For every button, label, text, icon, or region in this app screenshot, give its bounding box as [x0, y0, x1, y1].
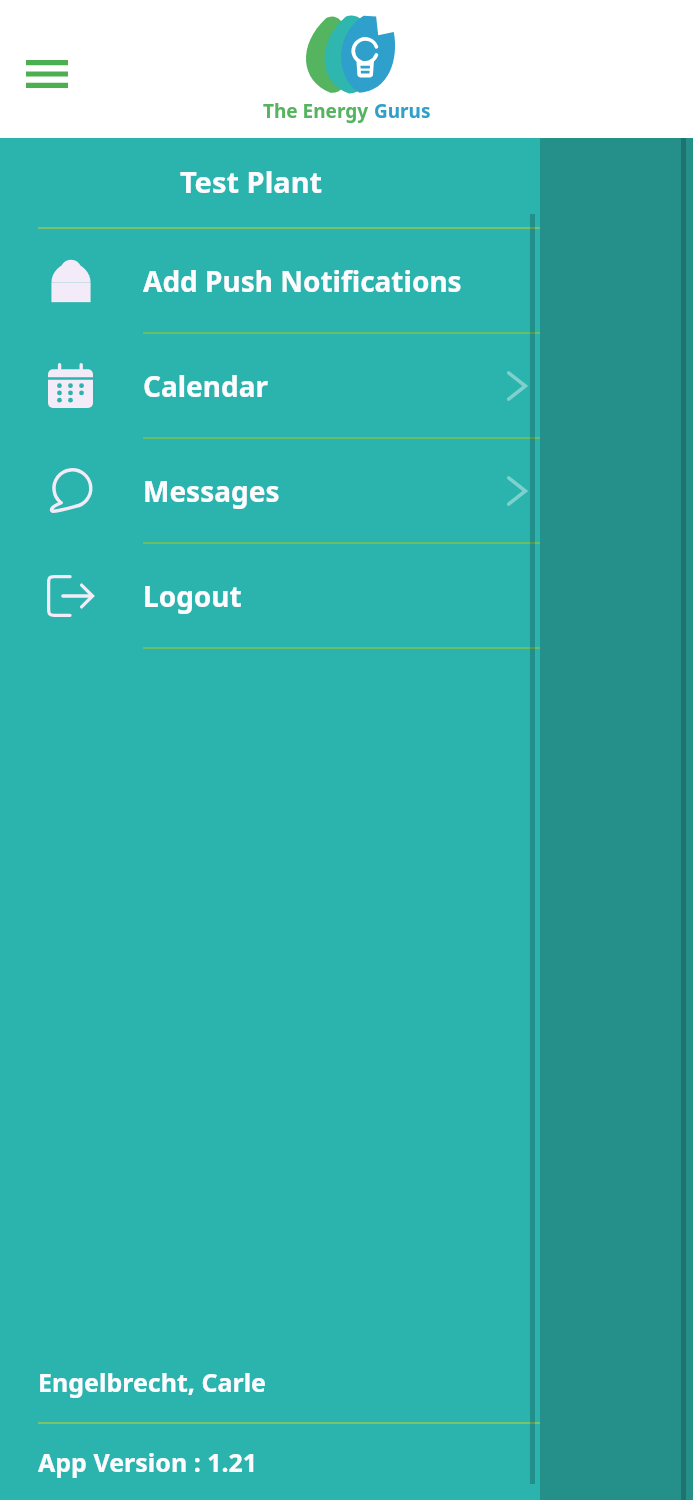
- staticText: Gurus: [374, 98, 431, 124]
- staticText: Logout: [143, 577, 493, 615]
- button[interactable]: Add Push Notifications: [0, 229, 540, 332]
- staticText: Add Push Notifications: [143, 262, 493, 300]
- staticText: Calendar: [143, 367, 493, 405]
- staticText: App Version : 1.21: [38, 1445, 258, 1479]
- staticText: Test Plant: [0, 162, 502, 201]
- button[interactable]: Engelbrecht, Carle: [0, 1342, 540, 1422]
- button[interactable]: Calendar: [0, 334, 540, 437]
- button[interactable]: Open navigation menu: [14, 48, 80, 100]
- staticText: The Energy: [263, 98, 374, 124]
- staticText: Engelbrecht, Carle: [38, 1365, 267, 1399]
- button[interactable]: Messages: [0, 439, 540, 542]
- button[interactable]: Logout: [0, 544, 540, 647]
- staticText: Messages: [143, 472, 493, 510]
